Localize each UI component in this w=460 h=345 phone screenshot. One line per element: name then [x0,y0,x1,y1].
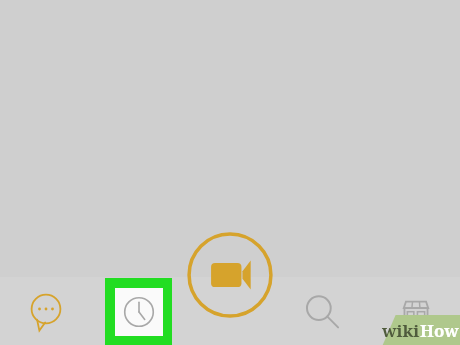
staticText: How [420,319,459,342]
button[interactable]: Recent [105,278,172,345]
button[interactable]: Store [388,284,444,338]
staticText: wiki [382,319,420,342]
button[interactable]: Start video call [186,231,274,319]
button[interactable]: Chats [14,283,78,339]
button[interactable]: Search [293,284,349,338]
